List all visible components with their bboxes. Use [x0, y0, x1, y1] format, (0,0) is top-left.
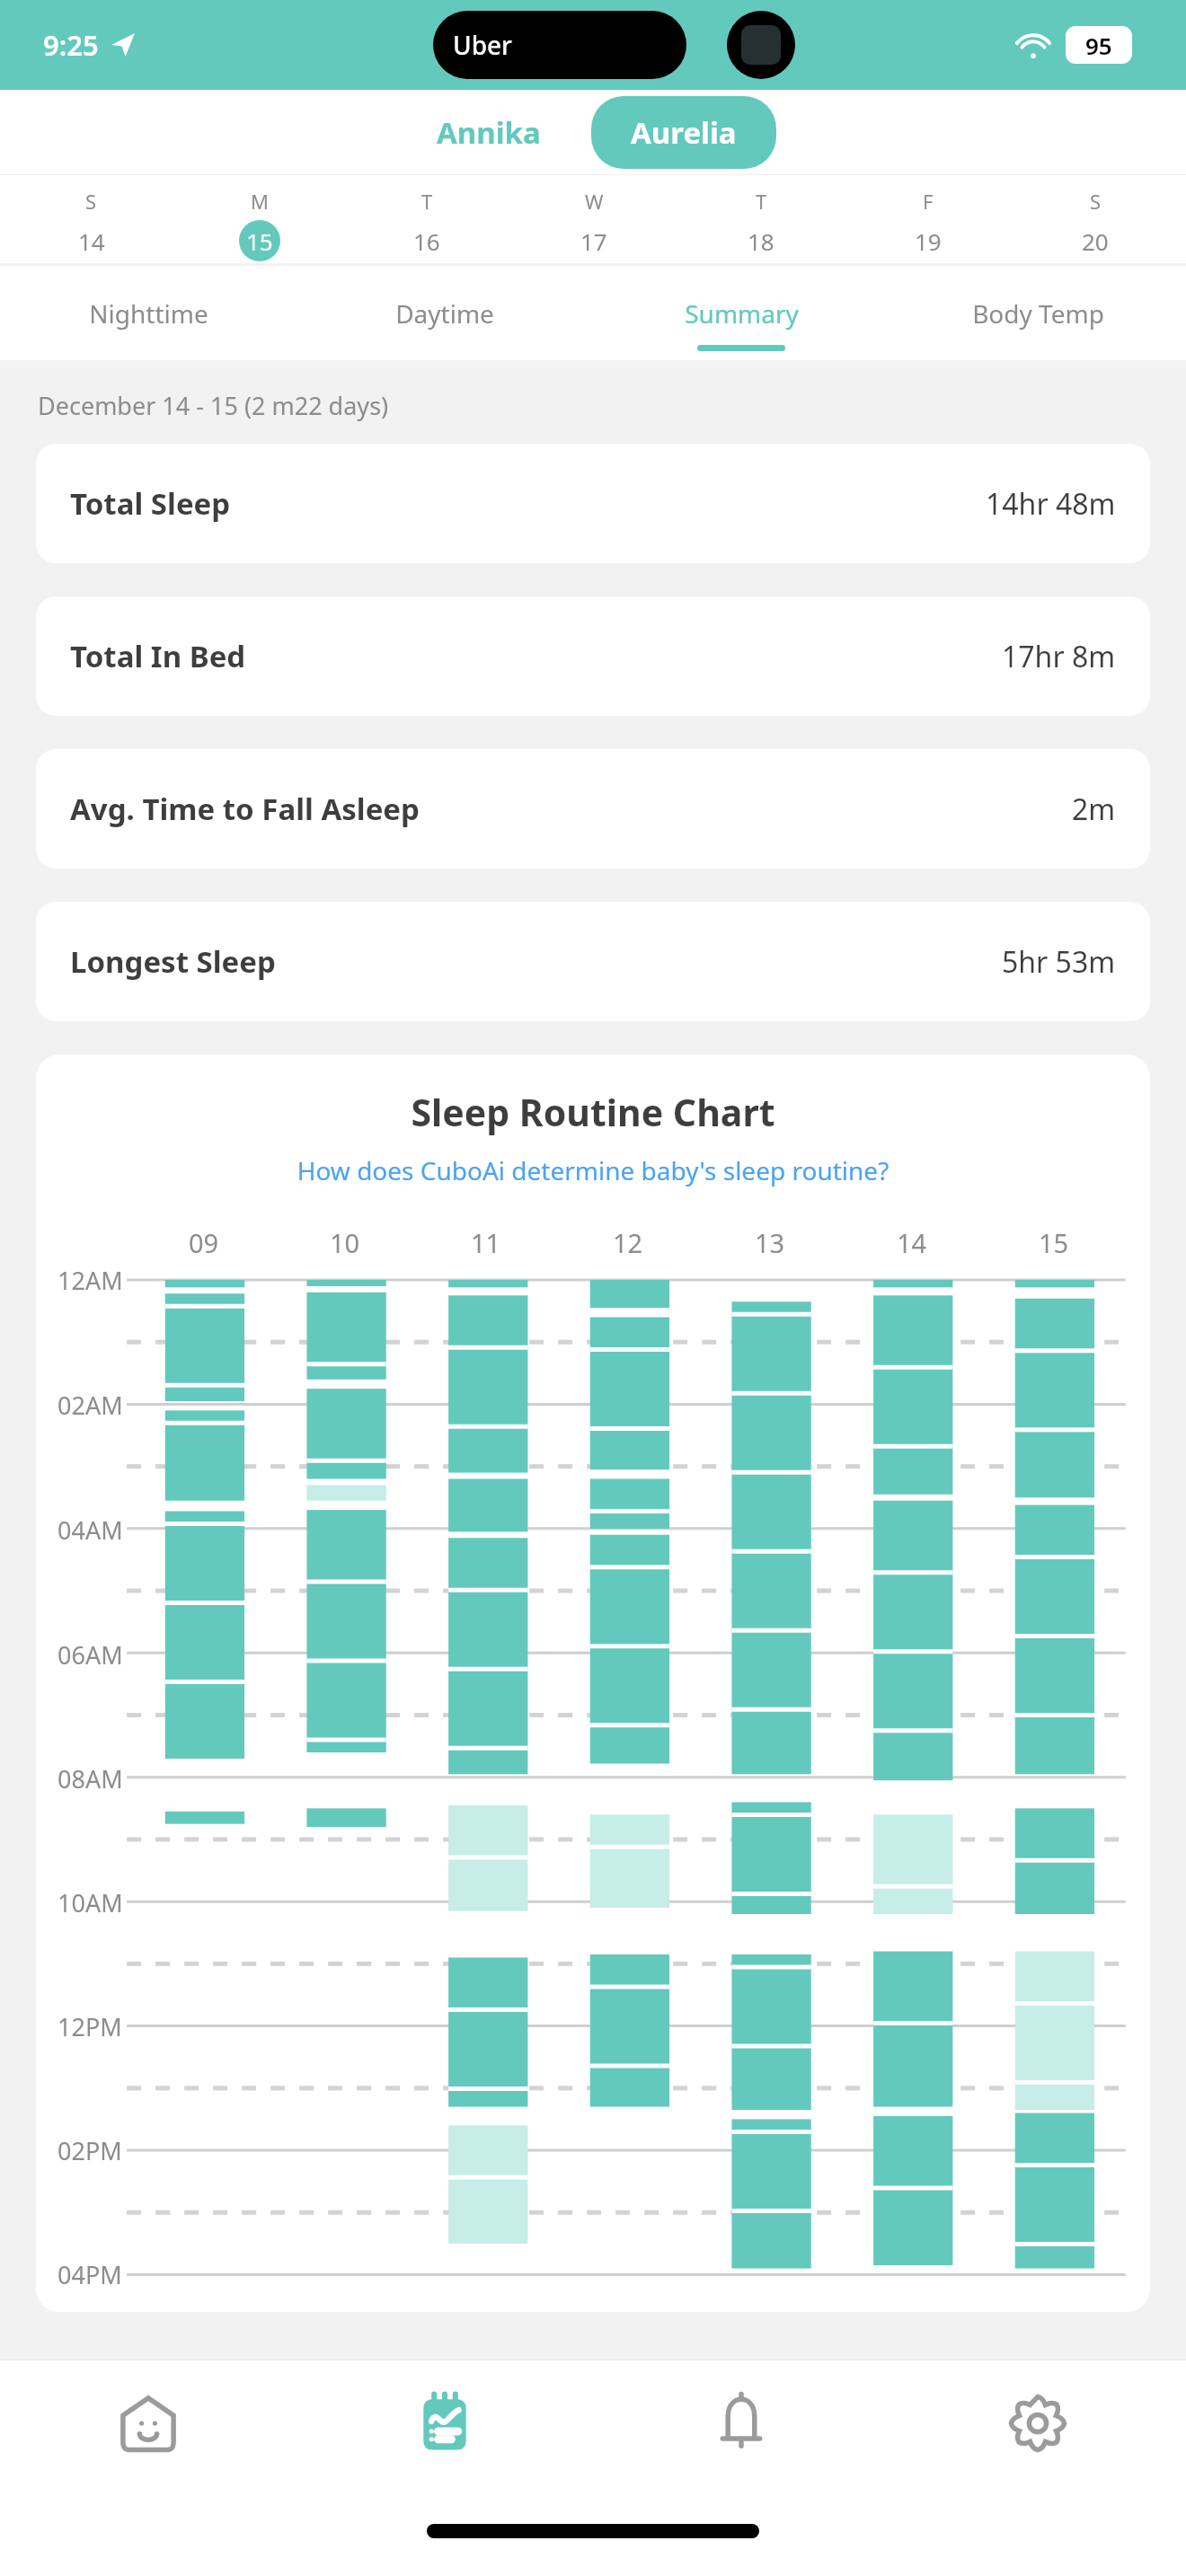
button[interactable]: S — [7, 175, 175, 263]
button[interactable]: Home — [0, 2360, 296, 2486]
button[interactable]: F — [845, 175, 1012, 263]
button[interactable]: Settings — [889, 2360, 1186, 2486]
staticText: 04AM — [58, 1513, 123, 1547]
staticText: 12PM — [58, 2010, 122, 2043]
staticText: Annika — [437, 112, 541, 153]
staticText: 10 — [330, 1225, 360, 1260]
staticText: Total In Bed — [70, 636, 246, 676]
staticText: 09 — [189, 1225, 219, 1260]
staticText: 02AM — [58, 1389, 123, 1422]
button[interactable]: How does CuboAi determine baby's sleep r… — [36, 1153, 1150, 1187]
staticText: 08AM — [58, 1762, 123, 1795]
button[interactable]: Longest Sleep — [36, 902, 1150, 1021]
staticText: 10AM — [58, 1886, 123, 1919]
staticText: S — [1090, 188, 1102, 215]
staticText: F — [923, 188, 934, 215]
button[interactable]: Avg. Time to Fall Asleep — [36, 749, 1150, 869]
staticText: 11 — [471, 1225, 501, 1260]
staticText: 02PM — [58, 2134, 122, 2167]
staticText: 20 — [1082, 225, 1109, 257]
staticText: 14 — [78, 225, 105, 257]
staticText: Longest Sleep — [70, 941, 276, 982]
staticText: 14 — [897, 1225, 927, 1260]
staticText: S — [85, 188, 97, 215]
staticText: 95 — [1085, 30, 1112, 61]
staticText: Summary — [685, 296, 799, 331]
staticText: W — [585, 188, 604, 215]
button[interactable]: Nighttime — [0, 266, 296, 360]
button[interactable]: Daytime — [296, 266, 593, 360]
staticText: 06AM — [58, 1638, 123, 1672]
button[interactable]: Statistics — [296, 2360, 593, 2486]
staticText: Daytime — [395, 296, 494, 331]
staticText: 12AM — [58, 1264, 123, 1297]
button[interactable]: Aurelia — [591, 96, 776, 169]
staticText: 17hr 8m — [1002, 637, 1116, 676]
staticText: Uber — [453, 28, 512, 62]
staticText: 15 — [246, 225, 273, 257]
staticText: Aurelia — [631, 112, 737, 153]
button[interactable]: Annika — [410, 100, 568, 165]
button[interactable]: Body Temp — [889, 266, 1186, 360]
staticText: M — [251, 188, 269, 215]
staticText: 9:25 — [43, 26, 99, 64]
staticText: Total Sleep — [70, 483, 231, 524]
staticText: 12 — [613, 1225, 643, 1260]
button[interactable]: T — [343, 175, 510, 263]
staticText: Avg. Time to Fall Asleep — [70, 789, 420, 829]
staticText: 04PM — [58, 2258, 122, 2291]
staticText: T — [756, 188, 767, 215]
button[interactable]: Summary — [593, 266, 889, 360]
staticText: 2m — [1072, 790, 1116, 829]
button[interactable]: Total Sleep — [36, 444, 1150, 563]
staticText: 15 — [1039, 1225, 1069, 1260]
button[interactable]: T — [677, 175, 845, 263]
staticText: December 14 - 15 (2 m22 days) — [38, 389, 389, 422]
staticText: Sleep Routine Chart — [36, 1087, 1150, 1137]
staticText: 17 — [580, 225, 607, 257]
staticText: 13 — [755, 1225, 785, 1260]
button[interactable]: M — [175, 175, 343, 263]
button[interactable]: W — [510, 175, 677, 263]
staticText: 14hr 48m — [986, 484, 1116, 524]
staticText: 19 — [915, 225, 942, 257]
button[interactable]: Notifications — [593, 2360, 889, 2486]
button[interactable]: Total In Bed — [36, 596, 1150, 716]
button[interactable]: S — [1012, 175, 1179, 263]
staticText: T — [421, 188, 433, 215]
staticText: Nighttime — [89, 296, 208, 331]
staticText: How does CuboAi determine baby's sleep r… — [36, 1153, 1150, 1187]
staticText: 5hr 53m — [1002, 942, 1116, 982]
staticText: Body Temp — [972, 296, 1104, 331]
staticText: 16 — [413, 225, 440, 257]
staticText: 18 — [748, 225, 774, 257]
